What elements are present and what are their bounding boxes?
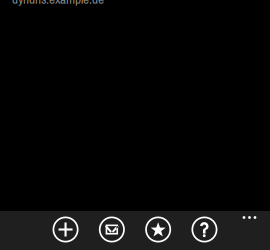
button[interactable]: Help [188,213,221,246]
button[interactable]: More [235,211,263,224]
button[interactable]: Add [49,213,82,246]
button[interactable]: Mail [95,213,128,246]
button[interactable]: Favorite [142,213,175,246]
staticText: dyndns.example.de [12,0,104,8]
